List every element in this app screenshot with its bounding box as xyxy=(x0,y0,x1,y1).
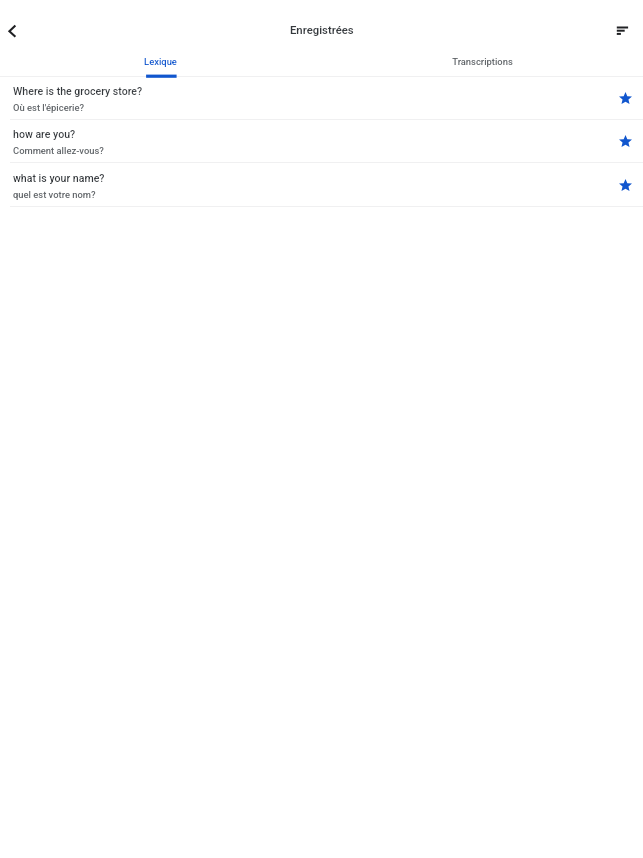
staticText: Where is the grocery store? xyxy=(13,85,143,97)
staticText: Transcriptions xyxy=(452,56,513,67)
staticText: what is your name? xyxy=(13,172,105,184)
button[interactable]: Sort xyxy=(609,14,643,38)
button[interactable]: how are you? xyxy=(0,120,643,163)
button[interactable]: Favorite xyxy=(607,77,643,120)
button[interactable]: Back xyxy=(0,13,26,49)
button[interactable]: Lexique xyxy=(0,53,321,77)
staticText: how are you? xyxy=(13,128,76,140)
button[interactable]: Favorite xyxy=(607,164,643,207)
button[interactable]: Transcriptions xyxy=(321,53,643,77)
staticText: quel est votre nom? xyxy=(13,189,96,200)
button[interactable]: Favorite xyxy=(607,120,643,163)
staticText: Enregistrées xyxy=(290,24,354,37)
staticText: Où est l'épicerie? xyxy=(13,102,84,113)
staticText: Lexique xyxy=(144,56,177,67)
button[interactable]: Where is the grocery store? xyxy=(0,77,643,120)
button[interactable]: what is your name? xyxy=(0,164,643,207)
staticText: Comment allez-vous? xyxy=(13,145,104,156)
